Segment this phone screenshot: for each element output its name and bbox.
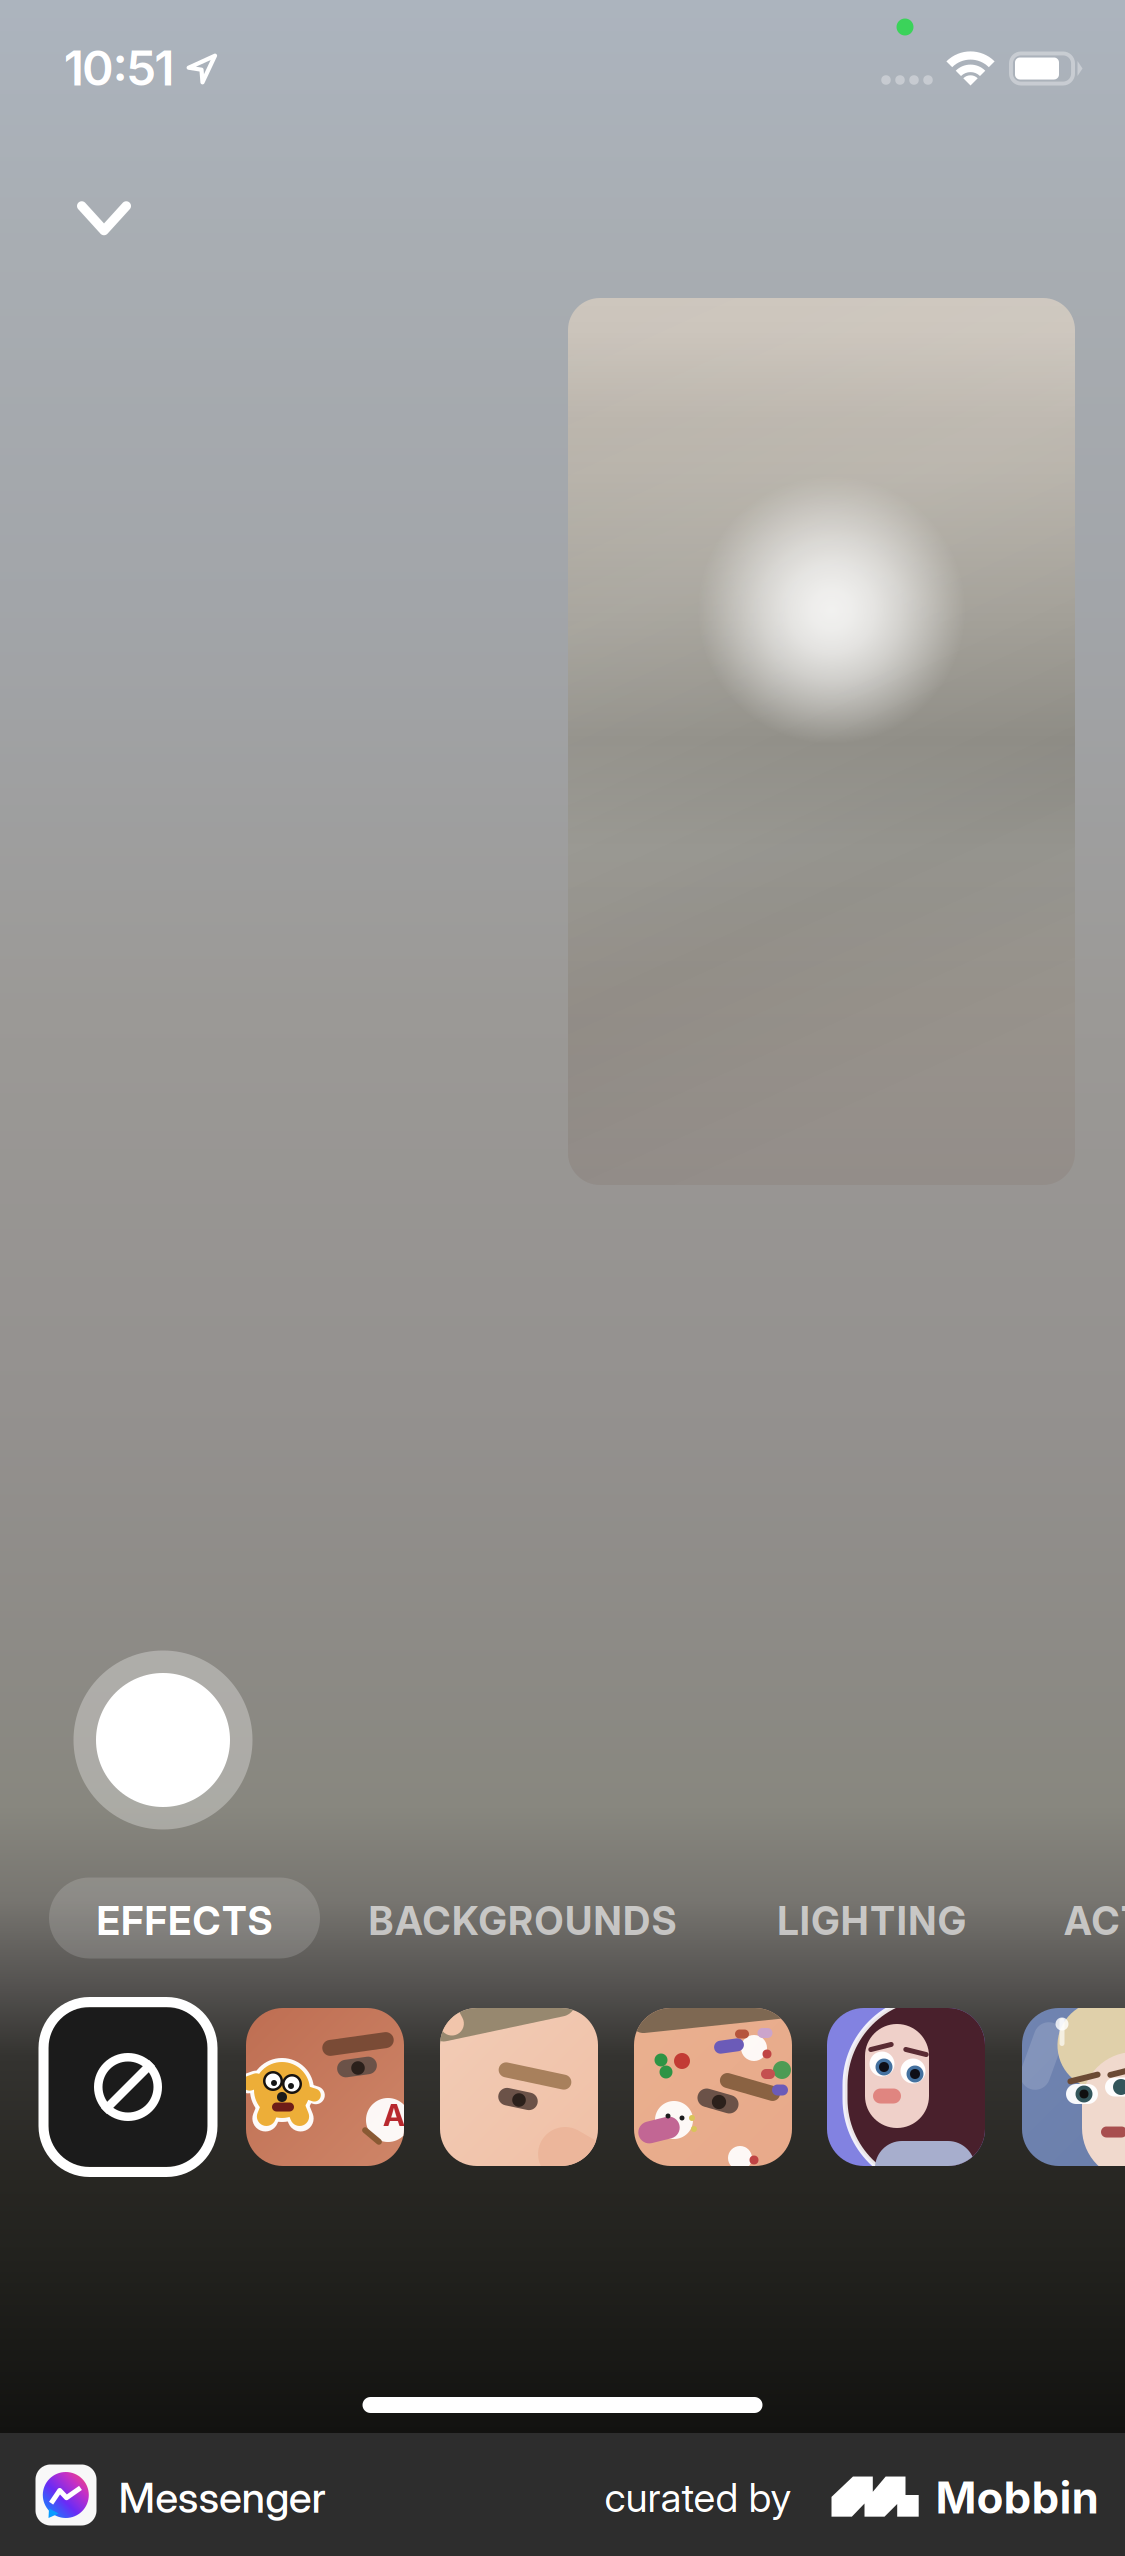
staticText: BACKGROUNDS [368,1898,676,1944]
button[interactable]: Jake effect [246,2008,404,2166]
staticText: Mobbin [935,2471,1098,2524]
staticText: EFFECTS [96,1898,272,1944]
button[interactable]: EFFECTS [49,1877,320,1958]
staticText: Messenger [119,2472,325,2523]
button[interactable]: LIGHTING [777,1892,966,1944]
staticText: 10:51 [64,39,174,97]
button[interactable]: Close camera [38,162,170,274]
button[interactable]: BACKGROUNDS [368,1892,676,1944]
button[interactable]: Hello Kitty effect [634,2008,792,2166]
staticText: curated by [604,2473,791,2522]
button[interactable]: ACTIONS [1064,1892,1125,1944]
button[interactable]: Ariel effect [827,2008,985,2166]
button[interactable]: Elsa effect [1022,2008,1125,2166]
button[interactable]: Capture [73,1650,252,1829]
staticText: A [383,2097,405,2133]
staticText: ACTIONS [1064,1898,1125,1944]
button[interactable]: No effect [38,1997,217,2177]
button[interactable]: Effect 3 [440,2008,598,2166]
staticText: LIGHTING [777,1898,966,1944]
